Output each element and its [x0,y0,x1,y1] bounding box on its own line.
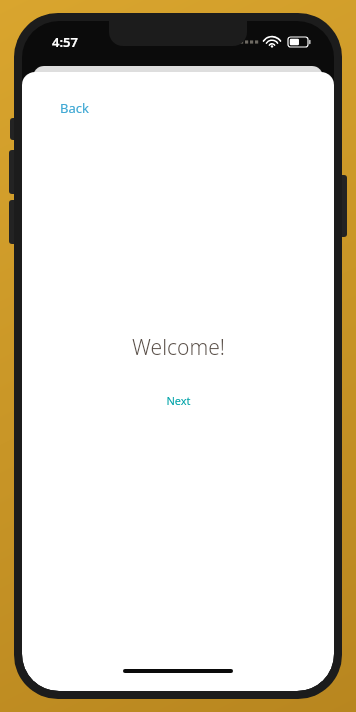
staticText: 4:57 [52,33,78,51]
button[interactable]: Next [160,390,197,411]
staticText: Welcome! [132,333,225,362]
other: Home indicator [123,669,233,673]
staticText: Back [60,99,89,117]
staticText: Next [166,393,191,408]
button[interactable]: Back [56,96,93,120]
